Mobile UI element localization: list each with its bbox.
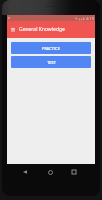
button[interactable]: Home [44, 166, 56, 178]
button[interactable]: Open navigation menu [7, 21, 18, 38]
staticText: TEST [47, 60, 56, 65]
button[interactable]: Back [19, 166, 31, 178]
staticText: 4:19 [86, 16, 94, 21]
staticText: PRACTICE [42, 46, 60, 51]
staticText: General Knowledge [19, 26, 65, 33]
button[interactable]: PRACTICE [11, 42, 91, 54]
button[interactable]: Recent apps [68, 166, 80, 178]
button[interactable]: TEST [11, 56, 91, 68]
